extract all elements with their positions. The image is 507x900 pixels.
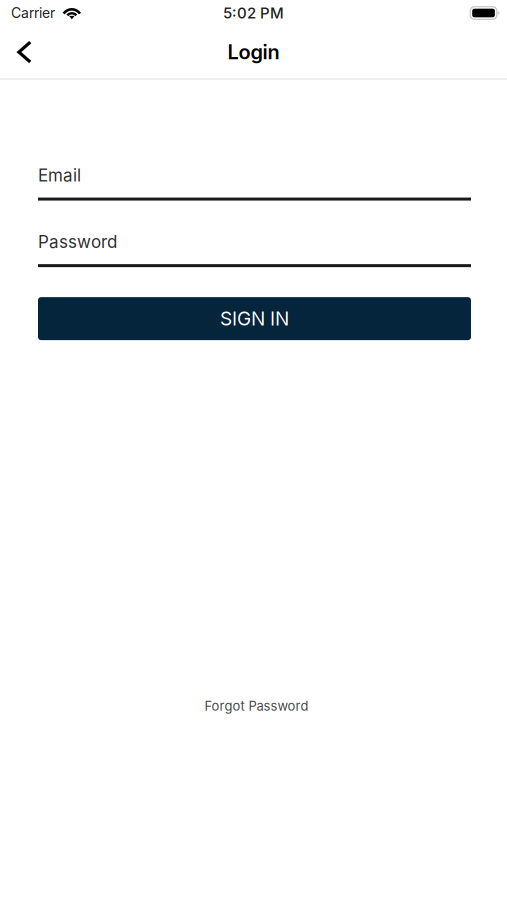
button[interactable]: Back — [0, 30, 45, 73]
staticText: Login — [227, 40, 279, 64]
staticText: 5:02 PM — [223, 4, 284, 22]
button[interactable]: Password — [38, 232, 471, 267]
staticText: Password — [38, 232, 117, 252]
staticText: Forgot Password — [204, 698, 308, 714]
staticText: SIGN IN — [220, 307, 289, 330]
staticText: Email — [38, 165, 81, 186]
button[interactable]: Forgot Password — [192, 691, 320, 721]
button[interactable]: Email — [38, 165, 471, 201]
staticText: Carrier — [11, 4, 55, 21]
button[interactable]: SIGN IN — [38, 297, 471, 340]
